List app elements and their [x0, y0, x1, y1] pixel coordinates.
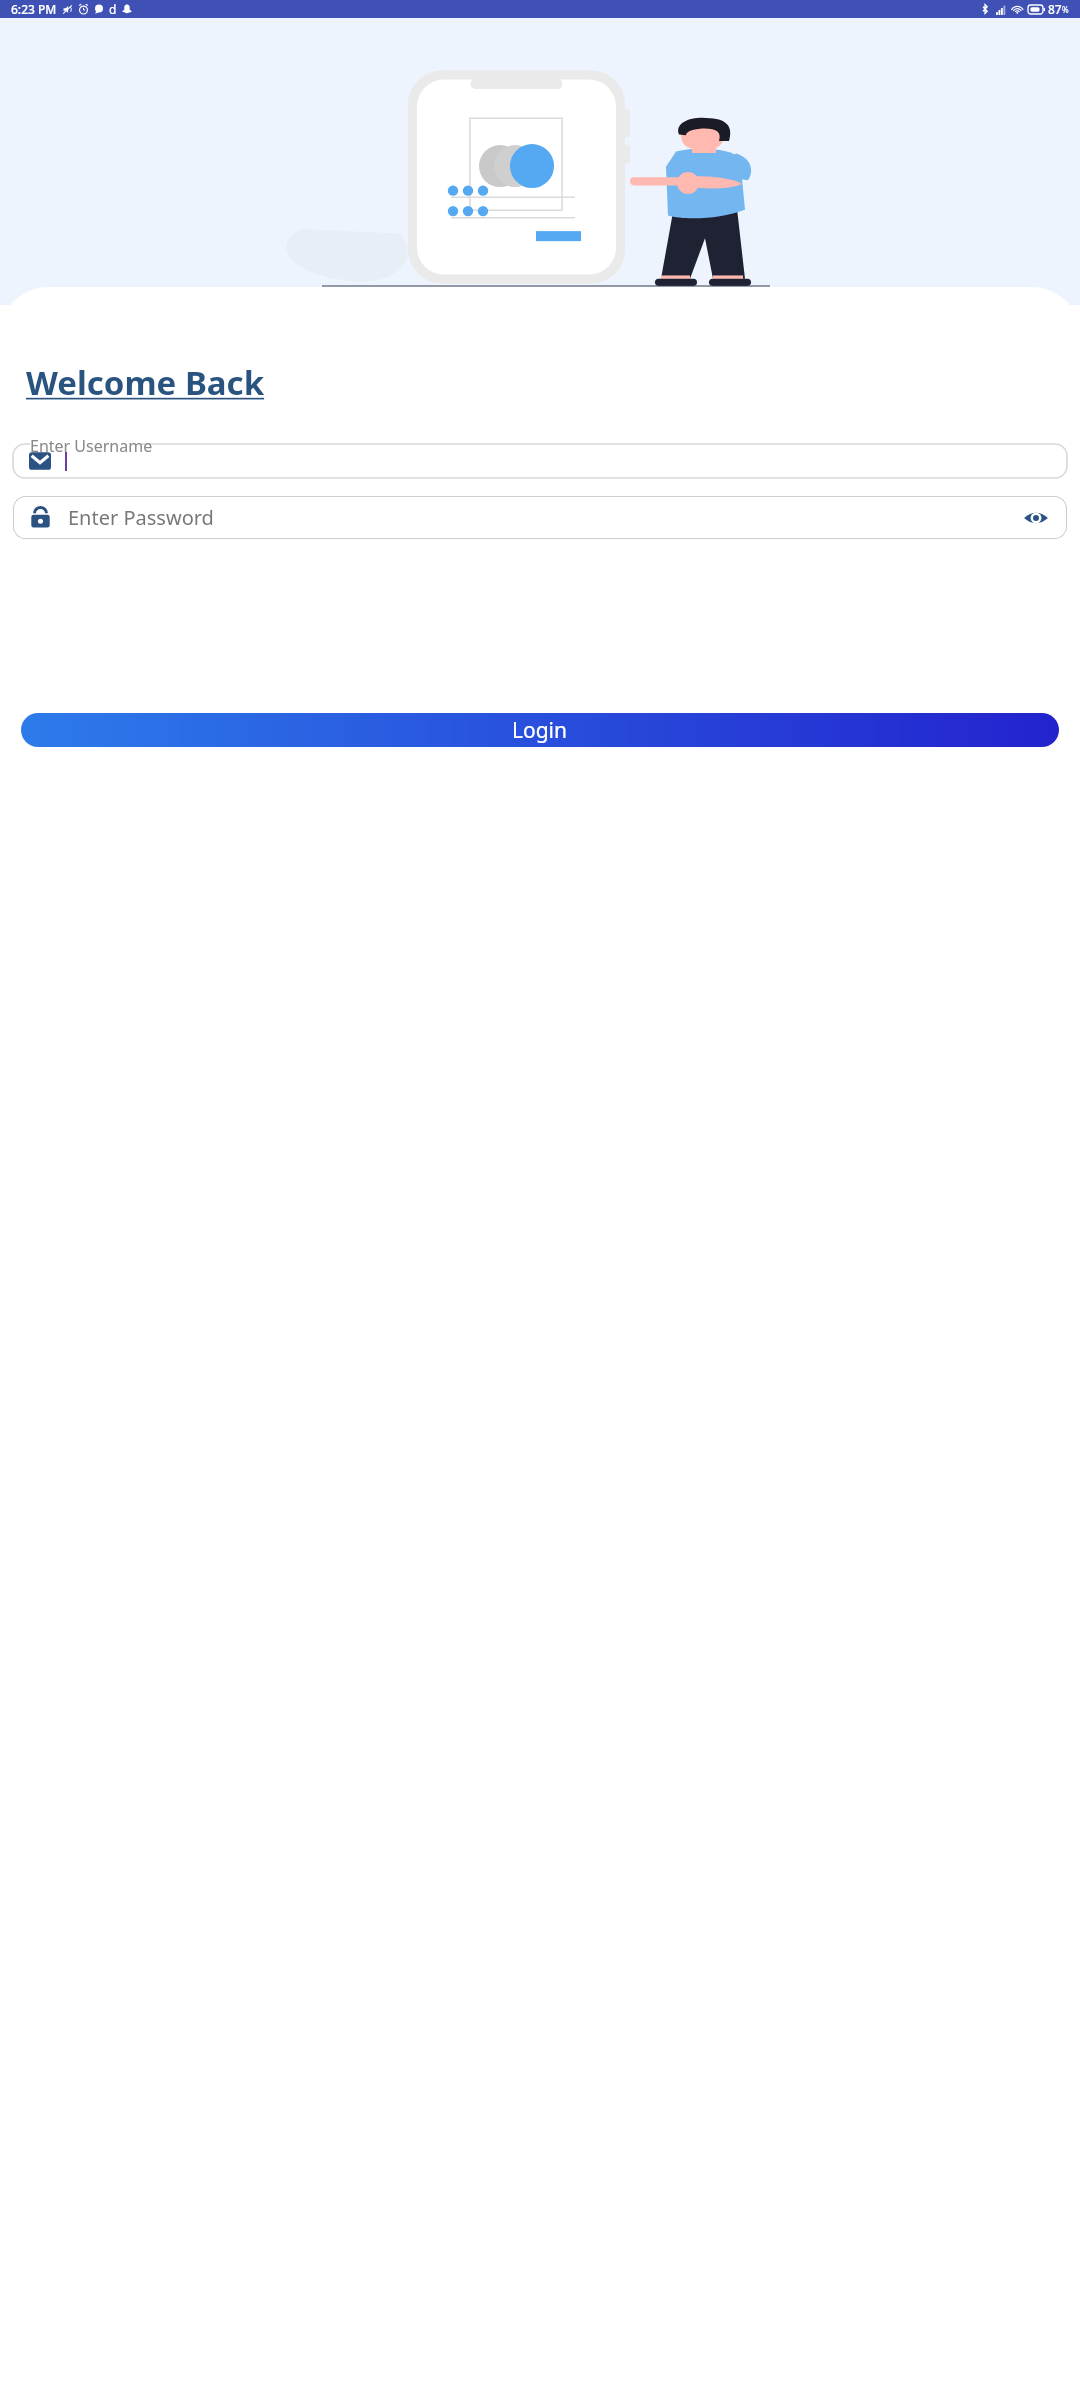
staticText: Login — [512, 716, 568, 745]
staticText: 87 — [1048, 1, 1062, 17]
staticText: % — [1062, 4, 1069, 15]
staticText: Welcome Back — [26, 360, 265, 405]
button[interactable]: Login — [21, 713, 1059, 747]
staticText: Enter Username — [30, 435, 153, 457]
button[interactable]: Enter Password — [13, 496, 1067, 539]
button[interactable]: Show password — [1021, 503, 1051, 533]
staticText: Enter Password — [68, 504, 1021, 531]
button[interactable] — [13, 436, 1067, 478]
staticText: d — [109, 1, 117, 17]
staticText: 6:23 PM — [11, 1, 57, 17]
